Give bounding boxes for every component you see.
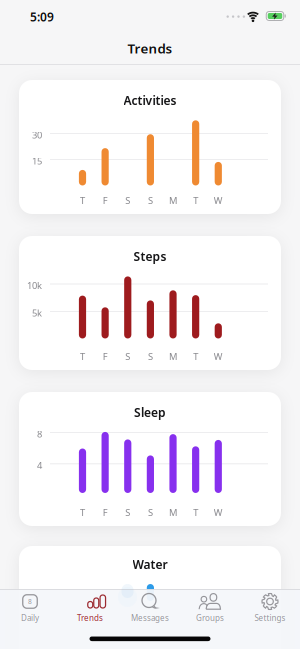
staticText: T	[80, 350, 85, 363]
staticText: M	[169, 350, 177, 363]
staticText: S	[125, 506, 130, 519]
staticText: T	[193, 194, 198, 207]
staticText: 4	[37, 459, 42, 471]
staticText: Groups	[196, 612, 224, 623]
staticText: 5k	[32, 307, 42, 319]
staticText: T	[193, 350, 198, 363]
staticText: W	[214, 506, 223, 519]
staticText: T	[80, 506, 85, 519]
staticText: Settings	[254, 612, 285, 623]
staticText: M	[169, 194, 177, 207]
staticText: T	[80, 194, 85, 207]
staticText: 30	[32, 129, 42, 141]
staticText: 15	[32, 155, 42, 167]
staticText: S	[148, 350, 153, 363]
staticText: T	[193, 506, 198, 519]
staticText: Sleep	[134, 404, 166, 420]
staticText: Activities	[123, 92, 176, 108]
staticText: F	[103, 350, 108, 363]
staticText: Daily	[21, 612, 39, 623]
staticText: W	[214, 350, 223, 363]
staticText: 8	[37, 428, 42, 440]
staticText: F	[103, 194, 108, 207]
staticText: M	[169, 506, 177, 519]
staticText: Water	[132, 556, 167, 572]
staticText: S	[125, 194, 130, 207]
staticText: S	[125, 350, 130, 363]
staticText: Steps	[133, 248, 166, 264]
staticText: 10k	[27, 279, 42, 292]
staticText: Trends	[127, 39, 172, 57]
staticText: F	[103, 506, 108, 519]
staticText: S	[148, 506, 153, 519]
staticText: 5:09	[30, 9, 54, 25]
staticText: W	[214, 194, 223, 207]
staticText: S	[148, 194, 153, 207]
staticText: 8	[28, 597, 32, 606]
staticText: Trends	[77, 612, 103, 623]
staticText: Messages	[131, 612, 169, 623]
